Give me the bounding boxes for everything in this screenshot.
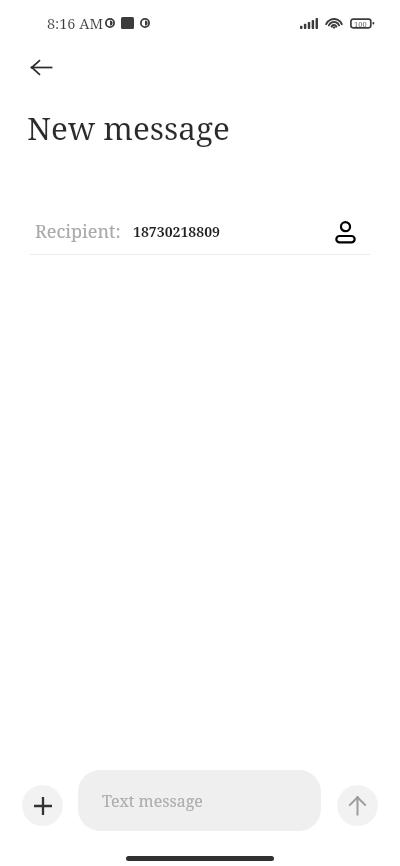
button[interactable]: Text message: [78, 770, 321, 831]
staticText: New message: [27, 106, 230, 149]
staticText: Recipient:: [35, 219, 121, 244]
staticText: 18730218809: [133, 222, 221, 241]
button[interactable]: Choose contact: [326, 213, 364, 251]
staticText: Text message: [102, 790, 203, 812]
button[interactable]: Send: [337, 785, 378, 826]
button[interactable]: Add attachment: [22, 785, 63, 826]
staticText: 100: [354, 19, 367, 29]
button[interactable]: Back: [20, 46, 62, 88]
staticText: 8:16 AM: [47, 13, 104, 33]
